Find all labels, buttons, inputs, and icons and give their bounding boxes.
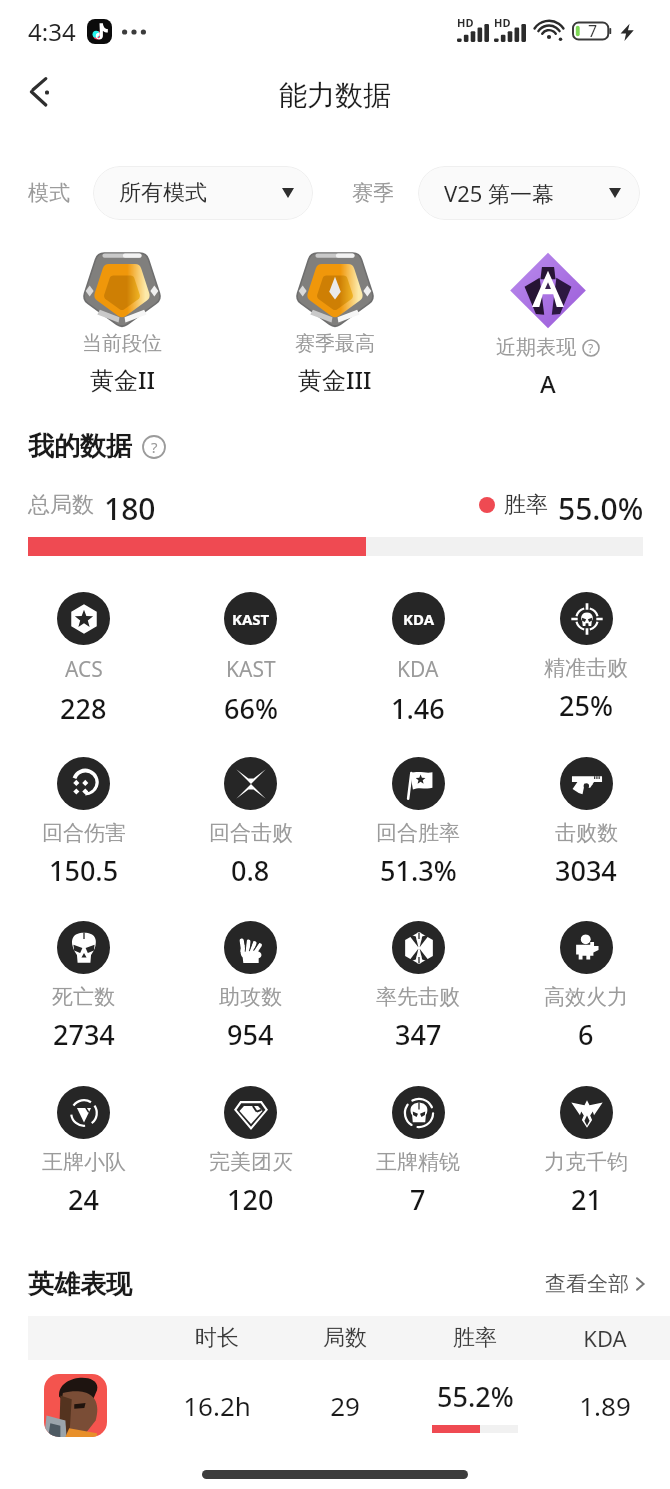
staticText: 近期表现 bbox=[496, 335, 576, 360]
staticText: KDA bbox=[583, 1323, 627, 1353]
button[interactable]: ACS bbox=[0, 592, 167, 742]
button[interactable]: 回合击败 bbox=[167, 757, 334, 907]
staticText: 180 bbox=[104, 488, 156, 522]
button[interactable]: 当前段位 bbox=[16, 251, 228, 396]
staticText: 高效火力 bbox=[544, 984, 628, 1010]
button[interactable]: 回合胜率 bbox=[334, 757, 502, 907]
staticText: HD bbox=[457, 15, 474, 30]
staticText: 模式 bbox=[28, 180, 70, 206]
button[interactable]: Back bbox=[12, 64, 70, 122]
staticText: 120 bbox=[227, 1181, 274, 1218]
staticText: 0.8 bbox=[231, 852, 270, 889]
button[interactable]: 精准击败 bbox=[502, 592, 670, 742]
button[interactable]: 完美团灭 bbox=[167, 1086, 334, 1236]
staticText: 7 bbox=[588, 20, 598, 42]
staticText: KDA bbox=[403, 609, 435, 629]
staticText: ? bbox=[588, 340, 594, 356]
button[interactable]: 王牌小队 bbox=[0, 1086, 167, 1236]
staticText: 回合伤害 bbox=[42, 820, 126, 846]
staticText: 2734 bbox=[53, 1016, 115, 1053]
staticText: 助攻数 bbox=[219, 984, 282, 1010]
staticText: 查看全部 bbox=[545, 1271, 629, 1297]
staticText: ACS bbox=[65, 655, 103, 684]
staticText: 150.5 bbox=[49, 852, 119, 889]
button[interactable]: 击败数 bbox=[502, 757, 670, 907]
staticText: 我的数据 bbox=[28, 430, 132, 463]
staticText: 胜率 bbox=[504, 491, 548, 519]
staticText: KAST bbox=[226, 655, 276, 684]
button[interactable]: KAST bbox=[167, 592, 334, 742]
button[interactable]: 率先击败 bbox=[334, 921, 502, 1071]
staticText: 55.2% bbox=[437, 1378, 514, 1415]
staticText: 24 bbox=[68, 1181, 99, 1218]
button[interactable]: 16.2h bbox=[0, 1360, 670, 1450]
button[interactable]: 回合伤害 bbox=[0, 757, 167, 907]
button[interactable]: 助攻数 bbox=[167, 921, 334, 1071]
staticText: 回合击败 bbox=[209, 820, 293, 846]
staticText: 25% bbox=[559, 687, 613, 724]
staticText: 66% bbox=[224, 690, 278, 727]
staticText: 王牌小队 bbox=[42, 1149, 126, 1175]
button[interactable]: 王牌精锐 bbox=[334, 1086, 502, 1236]
staticText: 6 bbox=[578, 1016, 594, 1053]
staticText: 王牌精锐 bbox=[376, 1149, 460, 1175]
staticText: 3034 bbox=[555, 852, 617, 889]
button[interactable]: KDA bbox=[334, 592, 502, 742]
staticText: 英雄表现 bbox=[28, 1268, 132, 1301]
staticText: 29 bbox=[330, 1388, 360, 1423]
staticText: 完美团灭 bbox=[209, 1149, 293, 1175]
staticText: 黄金II bbox=[90, 363, 155, 396]
staticText: 16.2h bbox=[183, 1388, 251, 1423]
staticText: KAST bbox=[232, 609, 270, 629]
staticText: 4:34 bbox=[28, 15, 76, 48]
staticText: 精准击败 bbox=[544, 655, 628, 681]
staticText: ? bbox=[151, 437, 158, 457]
staticText: 7 bbox=[410, 1181, 426, 1218]
staticText: V25 第一幕 bbox=[444, 178, 555, 208]
staticText: 回合胜率 bbox=[376, 820, 460, 846]
staticText: 954 bbox=[227, 1016, 274, 1053]
staticText: 率先击败 bbox=[376, 984, 460, 1010]
staticText: 所有模式 bbox=[119, 179, 207, 207]
staticText: 228 bbox=[60, 690, 107, 727]
button[interactable]: V25 第一幕 bbox=[418, 166, 640, 220]
button[interactable]: 死亡数 bbox=[0, 921, 167, 1071]
staticText: 赛季 bbox=[352, 180, 394, 206]
button[interactable]: 近期表现 bbox=[441, 251, 654, 400]
staticText: 总局数 bbox=[28, 491, 94, 519]
staticText: KDA bbox=[397, 655, 439, 684]
staticText: 时长 bbox=[195, 1324, 239, 1352]
button[interactable]: 所有模式 bbox=[93, 166, 313, 220]
staticText: 赛季最高 bbox=[295, 331, 375, 356]
button[interactable]: Info bbox=[142, 435, 166, 459]
staticText: 51.3% bbox=[380, 852, 457, 889]
staticText: 1.46 bbox=[391, 690, 445, 727]
staticText: 死亡数 bbox=[52, 984, 115, 1010]
staticText: A bbox=[540, 367, 556, 400]
staticText: HD bbox=[494, 15, 511, 30]
button[interactable]: 高效火力 bbox=[502, 921, 670, 1071]
staticText: 21 bbox=[571, 1181, 602, 1218]
button[interactable]: 查看全部 bbox=[545, 1271, 646, 1297]
staticText: 1.89 bbox=[579, 1388, 631, 1423]
staticText: 黄金III bbox=[298, 363, 372, 396]
button[interactable]: 赛季最高 bbox=[228, 251, 441, 396]
staticText: 55.0% bbox=[558, 488, 644, 522]
staticText: 能力数据 bbox=[279, 78, 391, 113]
staticText: 胜率 bbox=[453, 1324, 497, 1352]
staticText: 力克千钧 bbox=[544, 1149, 628, 1175]
staticText: 347 bbox=[395, 1016, 442, 1053]
staticText: 局数 bbox=[323, 1324, 367, 1352]
staticText: 击败数 bbox=[555, 820, 618, 846]
button[interactable]: 力克千钧 bbox=[502, 1086, 670, 1236]
staticText: 当前段位 bbox=[82, 331, 162, 356]
